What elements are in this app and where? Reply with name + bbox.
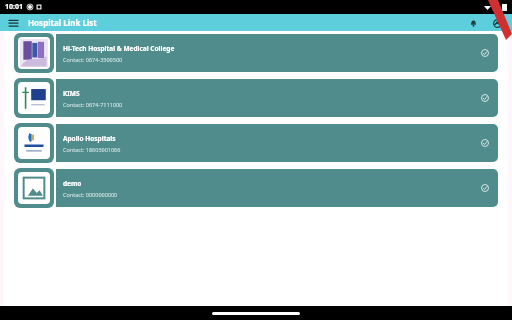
button[interactable]: KIMS [14, 77, 498, 118]
button[interactable]: demo [14, 167, 498, 208]
button[interactable]: Select hospital [478, 136, 492, 150]
staticText: KIMS [63, 89, 80, 98]
button[interactable]: Notifications [466, 16, 480, 30]
staticText: Hospital Link List [28, 17, 97, 28]
staticText: 10:01 [5, 2, 23, 12]
button[interactable]: Apollo Hospitals [14, 122, 498, 163]
button[interactable]: Select hospital [478, 46, 492, 60]
staticText: Apollo Hospitals [63, 134, 116, 143]
staticText: Contact: 0674-7111000 [63, 101, 123, 108]
staticText: Hi-Tech Hospital & Medical College [63, 44, 175, 53]
staticText: Contact: 18605001066 [63, 146, 121, 153]
button[interactable]: Select hospital [478, 91, 492, 105]
button[interactable]: Home gesture bar [212, 312, 300, 315]
staticText: demo [63, 179, 82, 188]
staticText: Contact: 0000000000 [63, 191, 118, 198]
button[interactable]: Hi-Tech Hospital & Medical College [14, 32, 498, 73]
button[interactable]: Open navigation menu [6, 16, 20, 30]
button[interactable]: Select hospital [478, 181, 492, 195]
button[interactable]: Account [490, 16, 504, 30]
staticText: Contact: 0674-3500500 [63, 56, 123, 63]
